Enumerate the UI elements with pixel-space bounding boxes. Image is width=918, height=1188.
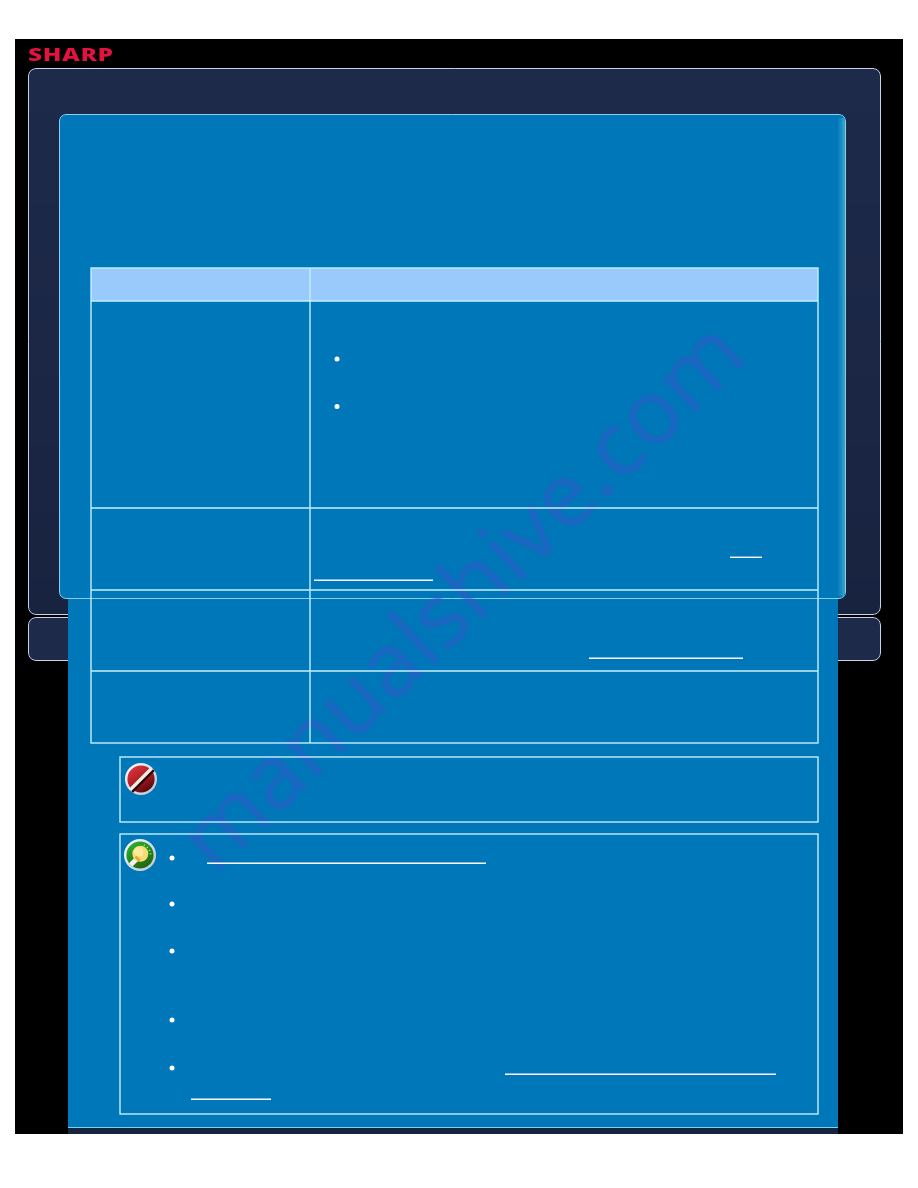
button[interactable]: Table row 3 xyxy=(91,590,818,671)
button[interactable]: SHARP xyxy=(26,41,116,63)
button[interactable]: Scroll bar xyxy=(838,118,845,596)
button[interactable]: Table row 4 xyxy=(91,671,818,743)
button[interactable] xyxy=(28,617,881,661)
button[interactable]: Link xyxy=(314,569,433,581)
button[interactable]: Item column header xyxy=(91,268,310,301)
button[interactable]: Description column header xyxy=(310,268,818,301)
button[interactable]: Table row 1 xyxy=(91,301,818,508)
staticText: manualshive.com xyxy=(149,290,767,893)
button[interactable]: Prohibited note xyxy=(120,757,818,822)
button[interactable]: Link xyxy=(191,1088,271,1100)
button[interactable]: Table row 2 xyxy=(91,508,818,590)
button[interactable]: Link xyxy=(589,647,743,659)
button[interactable]: Tip xyxy=(124,839,156,871)
staticText: SHARP xyxy=(28,43,114,65)
button[interactable]: Link xyxy=(207,852,486,864)
button[interactable]: Link xyxy=(505,1063,776,1075)
button[interactable]: Prohibited xyxy=(125,763,157,795)
button[interactable]: Link xyxy=(730,546,762,558)
